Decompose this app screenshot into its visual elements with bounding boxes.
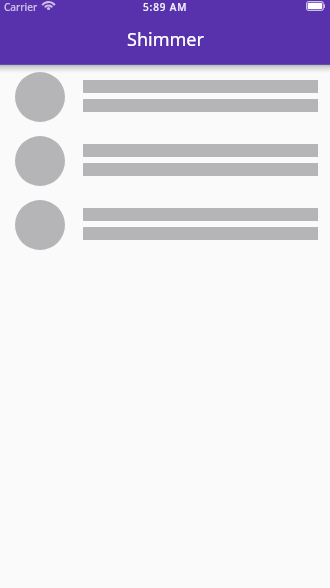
button[interactable] [0, 193, 330, 257]
other: Battery full [306, 1, 325, 11]
staticText: 5:89 AM [143, 0, 188, 11]
staticText: Carrier [4, 0, 38, 11]
button[interactable] [0, 65, 330, 129]
button[interactable] [0, 129, 330, 193]
other: Wi-Fi signal [42, 1, 55, 10]
staticText: Shimmer [127, 27, 204, 52]
